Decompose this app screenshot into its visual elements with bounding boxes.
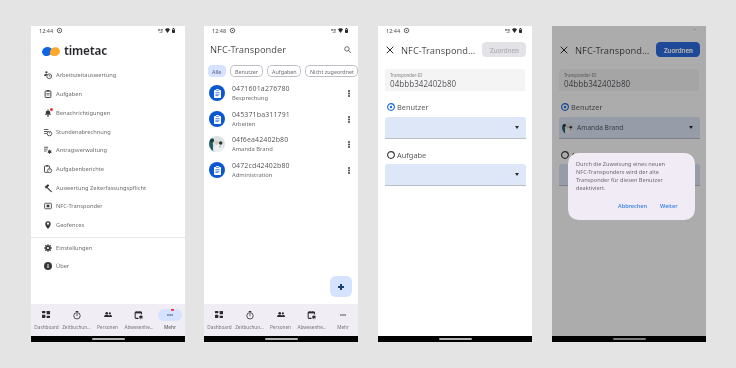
staticText: Zuordnen bbox=[664, 46, 693, 54]
button[interactable]: Über bbox=[31, 256, 185, 275]
staticText: Besprechung bbox=[232, 94, 269, 102]
staticText: timetac bbox=[64, 43, 107, 59]
button[interactable]: Zeitbuchun… bbox=[61, 304, 92, 336]
staticText: Benutzer bbox=[571, 102, 603, 112]
staticText: NFC-Transpond… bbox=[575, 44, 650, 56]
button[interactable]: NFC-Transpond… bbox=[575, 44, 650, 56]
button[interactable]: Abwesenhe… bbox=[123, 304, 154, 336]
staticText: Durch die Zuweisung eines neuen NFC-Tran… bbox=[576, 160, 665, 192]
button[interactable]: Aufgaben bbox=[31, 84, 185, 103]
staticText: NFC-Transpond… bbox=[401, 44, 476, 56]
button[interactable]: Dashboard bbox=[31, 304, 61, 336]
button[interactable]: 04f6ea42402b80 bbox=[204, 131, 358, 157]
button[interactable]: Geofences bbox=[31, 215, 185, 234]
staticText: 04bbb342402b80 bbox=[390, 78, 457, 89]
staticText: Aufgaben bbox=[272, 68, 297, 75]
staticText: Amanda Brand bbox=[577, 123, 624, 132]
staticText: Aufgabe bbox=[571, 150, 601, 160]
button[interactable]: Zeitbuchun… bbox=[234, 304, 265, 336]
button[interactable]: Benutzer bbox=[552, 102, 706, 112]
button[interactable]: Suchen bbox=[341, 43, 353, 55]
staticText: Alle bbox=[212, 68, 222, 75]
button[interactable] bbox=[385, 117, 526, 138]
staticText: Benutzer bbox=[397, 102, 429, 112]
button[interactable]: Abbrechen bbox=[618, 202, 648, 210]
staticText: Abwesenhe… bbox=[297, 324, 327, 330]
button[interactable]: Aufgabenberichte bbox=[31, 159, 185, 178]
button[interactable]: Aufgaben bbox=[267, 65, 301, 77]
staticText: Benachrichtigungen bbox=[56, 109, 111, 117]
button[interactable]: NFC-Transponder bbox=[210, 43, 287, 55]
button[interactable]: Benachrichtigungen bbox=[31, 103, 185, 122]
button[interactable] bbox=[559, 164, 700, 185]
staticText: 0472cd42402b80 bbox=[232, 161, 290, 171]
button[interactable]: Zuordnen bbox=[482, 42, 526, 57]
staticText: Mehr bbox=[164, 324, 176, 330]
staticText: 04bbb342402b80 bbox=[564, 78, 631, 89]
staticText: Dashboard bbox=[34, 324, 59, 330]
staticText: Administration bbox=[232, 171, 273, 179]
staticText: Über bbox=[56, 262, 70, 270]
button[interactable]: 0471601a276780 bbox=[204, 80, 358, 106]
staticText: Antragsverwaltung bbox=[56, 146, 108, 154]
staticText: 045371ba311791 bbox=[232, 110, 290, 120]
staticText: Zeitbuchun… bbox=[62, 324, 91, 330]
button[interactable]: Auswertung Zeiterfassungspflicht bbox=[31, 178, 185, 197]
staticText: Arbeiten bbox=[232, 120, 256, 128]
staticText: Auswertung Zeiterfassungspflicht bbox=[56, 184, 147, 192]
button[interactable]: Personen bbox=[265, 304, 296, 336]
staticText: Weiter bbox=[660, 202, 678, 210]
button[interactable]: Amanda Brand bbox=[559, 117, 700, 138]
button[interactable]: Aufgabe bbox=[552, 150, 706, 160]
button[interactable]: Mehr Optionen bbox=[344, 139, 354, 149]
staticText: Abbrechen bbox=[618, 202, 648, 210]
button[interactable]: Zuordnen bbox=[656, 42, 700, 57]
button[interactable]: Arbeitszeitauswertung bbox=[31, 65, 185, 84]
staticText: Einstellungen bbox=[56, 244, 93, 252]
button[interactable]: Schließen bbox=[559, 45, 569, 55]
button[interactable] bbox=[385, 164, 526, 185]
button[interactable]: Abwesenhe… bbox=[296, 304, 327, 336]
staticText: Aufgabenberichte bbox=[56, 165, 105, 173]
button[interactable]: NFC-Transponder bbox=[31, 196, 185, 215]
staticText: Aufgabe bbox=[397, 150, 427, 160]
button[interactable]: Stundenabrechnung bbox=[31, 122, 185, 141]
button[interactable]: Mehr Optionen bbox=[344, 114, 354, 124]
button[interactable]: Dashboard bbox=[204, 304, 234, 336]
staticText: Abwesenhe… bbox=[124, 324, 154, 330]
button[interactable]: 0472cd42402b80 bbox=[204, 157, 358, 183]
button[interactable]: Mehr Optionen bbox=[344, 165, 354, 175]
staticText: Transponder-ID bbox=[564, 72, 597, 78]
staticText: 04f6ea42402b80 bbox=[232, 135, 289, 145]
staticText: Aufgaben bbox=[56, 90, 83, 98]
button[interactable]: Antragsverwaltung bbox=[31, 140, 185, 159]
button[interactable]: NFC-Transpond… bbox=[401, 44, 476, 56]
staticText: Transponder-ID bbox=[390, 72, 423, 78]
button[interactable]: Benutzer bbox=[230, 65, 263, 77]
staticText: Zuordnen bbox=[490, 46, 519, 54]
button[interactable]: Mehr bbox=[327, 304, 358, 336]
button[interactable]: Einstellungen bbox=[31, 238, 185, 257]
button[interactable]: 045371ba311791 bbox=[204, 106, 358, 132]
button[interactable]: Nicht zugeordnet bbox=[305, 65, 358, 77]
staticText: Nicht zugeordnet bbox=[310, 68, 354, 75]
button[interactable]: Personen bbox=[92, 304, 123, 336]
button[interactable]: Hinzufügen bbox=[330, 276, 352, 297]
button[interactable]: Mehr bbox=[154, 304, 185, 336]
staticText: 12:44 bbox=[39, 27, 54, 34]
staticText: Zeitbuchun… bbox=[235, 324, 264, 330]
button[interactable]: Benutzer bbox=[378, 102, 532, 112]
button[interactable]: Mehr Optionen bbox=[344, 88, 354, 98]
staticText: Amanda Brand bbox=[232, 145, 273, 153]
staticText: 12:44 bbox=[386, 27, 401, 34]
staticText: 0471601a276780 bbox=[232, 84, 290, 94]
staticText: 12:48 bbox=[212, 27, 227, 34]
button[interactable]: Aufgabe bbox=[378, 150, 532, 160]
button[interactable]: Schließen bbox=[385, 45, 395, 55]
button[interactable]: Alle bbox=[208, 65, 226, 77]
staticText: Dashboard bbox=[207, 324, 232, 330]
staticText: Mehr bbox=[337, 324, 349, 330]
staticText: Personen bbox=[270, 324, 291, 330]
button[interactable]: Weiter bbox=[660, 202, 678, 210]
